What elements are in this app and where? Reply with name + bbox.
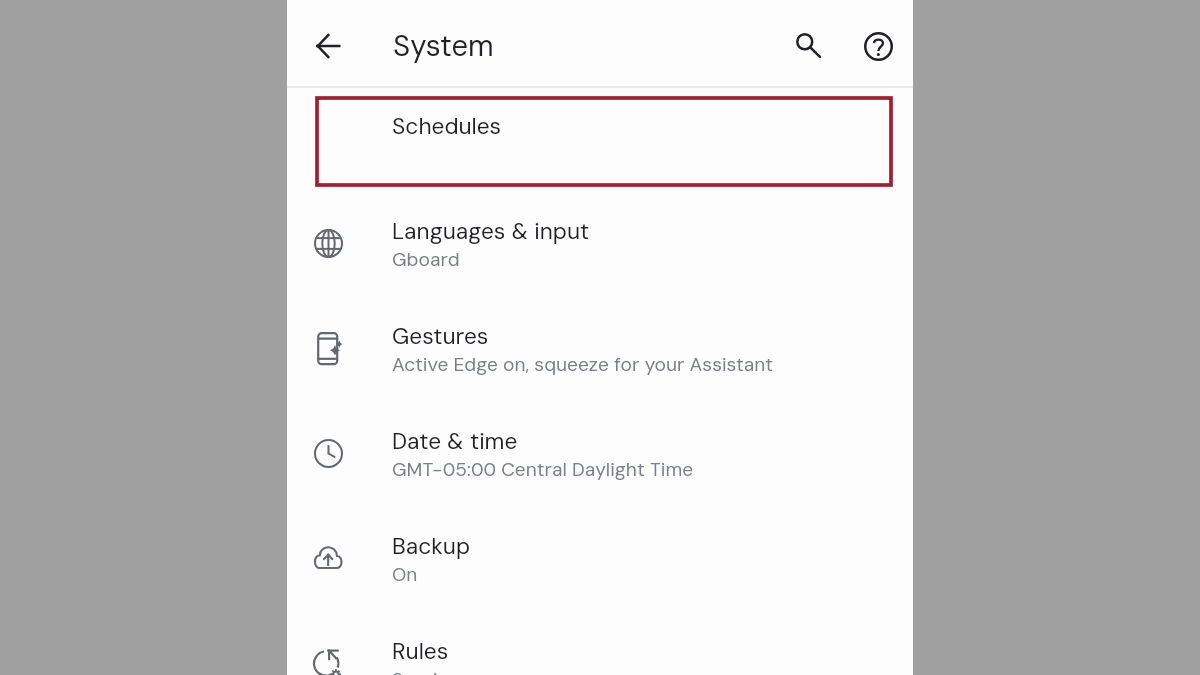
staticText: Backup: [392, 531, 470, 561]
staticText: Sunday: [392, 667, 459, 675]
button[interactable]: Backup, On: [287, 508, 913, 613]
staticText: GMT-05:00 Central Daylight Time: [392, 457, 694, 482]
staticText: On: [392, 562, 418, 587]
staticText: Rules: [392, 636, 449, 666]
staticText: Languages & input: [392, 216, 590, 246]
button[interactable]: Languages & input, Gboard: [287, 193, 913, 298]
staticText: Gboard: [392, 247, 460, 272]
button[interactable]: Rules, Sunday: [287, 613, 913, 675]
button[interactable]: Back: [304, 22, 352, 70]
staticText: Gestures: [392, 321, 489, 351]
button[interactable]: Search: [784, 21, 832, 69]
staticText: System: [393, 27, 494, 65]
staticText: Active Edge on, squeeze for your Assista…: [392, 352, 774, 377]
staticText: Date & time: [392, 426, 518, 456]
button[interactable]: Schedules: [287, 88, 913, 193]
button[interactable]: Help: [854, 22, 902, 70]
staticText: Schedules: [392, 111, 502, 141]
button[interactable]: Date & time, GMT-05:00 Central Daylight …: [287, 403, 913, 508]
button[interactable]: Gestures, Active Edge on, squeeze for yo…: [287, 298, 913, 403]
